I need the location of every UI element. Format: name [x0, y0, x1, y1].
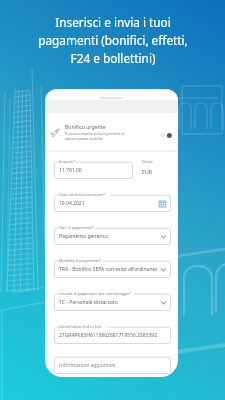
button[interactable]: Identificativo End to End — [54, 323, 171, 344]
other: Apri elenco — [160, 299, 167, 306]
button[interactable]: Attiva bonifico urgente — [160, 133, 172, 138]
staticText: Causale di pagamento per monitoraggio* — [59, 291, 132, 296]
other: Apri elenco — [160, 233, 167, 240]
staticText: Identificativo End to End — [59, 324, 102, 329]
button[interactable]: Modalità di pagamento* — [54, 257, 171, 278]
button[interactable]: Importo* — [54, 158, 133, 179]
staticText: TRA - Bonifico SEPA con esito all'ordina… — [59, 266, 160, 273]
staticText: 11.791,00 — [59, 167, 129, 174]
staticText: Tipo di pagamento* — [59, 225, 94, 230]
button[interactable]: Bonifico urgente — [45, 113, 178, 150]
staticText: 27GR4PK83H6115862681719550.2583392 — [59, 332, 167, 339]
staticText: Data richiesta esecuzione* — [59, 192, 106, 197]
staticText: Divisa — [142, 159, 153, 164]
other: Bonifico urgente — [50, 127, 60, 137]
other: Apri elenco — [160, 266, 167, 273]
button[interactable]: Data richiesta esecuzione* — [54, 191, 171, 212]
staticText: Informazioni aggiuntive — [59, 362, 167, 369]
staticText: EUR — [142, 168, 152, 175]
staticText: 19.04.2021 — [59, 200, 158, 207]
button[interactable]: Causale di pagamento per monitoraggio* — [54, 290, 171, 311]
button[interactable]: Informazioni aggiuntive — [54, 353, 171, 374]
other: Seleziona data — [158, 199, 167, 208]
staticText: Il conto ordinante scelto ti permette di… — [65, 131, 125, 141]
button[interactable]: Tipo di pagamento* — [54, 224, 171, 245]
staticText: Inserisci e invia i tuoi pagamenti (boni… — [38, 14, 188, 67]
staticText: 1C - Personale distaccato — [59, 299, 160, 306]
staticText: Modalità di pagamento* — [59, 258, 102, 263]
staticText: Pagamento generico — [59, 233, 160, 240]
staticText: Bonifico urgente — [65, 123, 106, 130]
staticText: Importo* — [59, 159, 76, 164]
